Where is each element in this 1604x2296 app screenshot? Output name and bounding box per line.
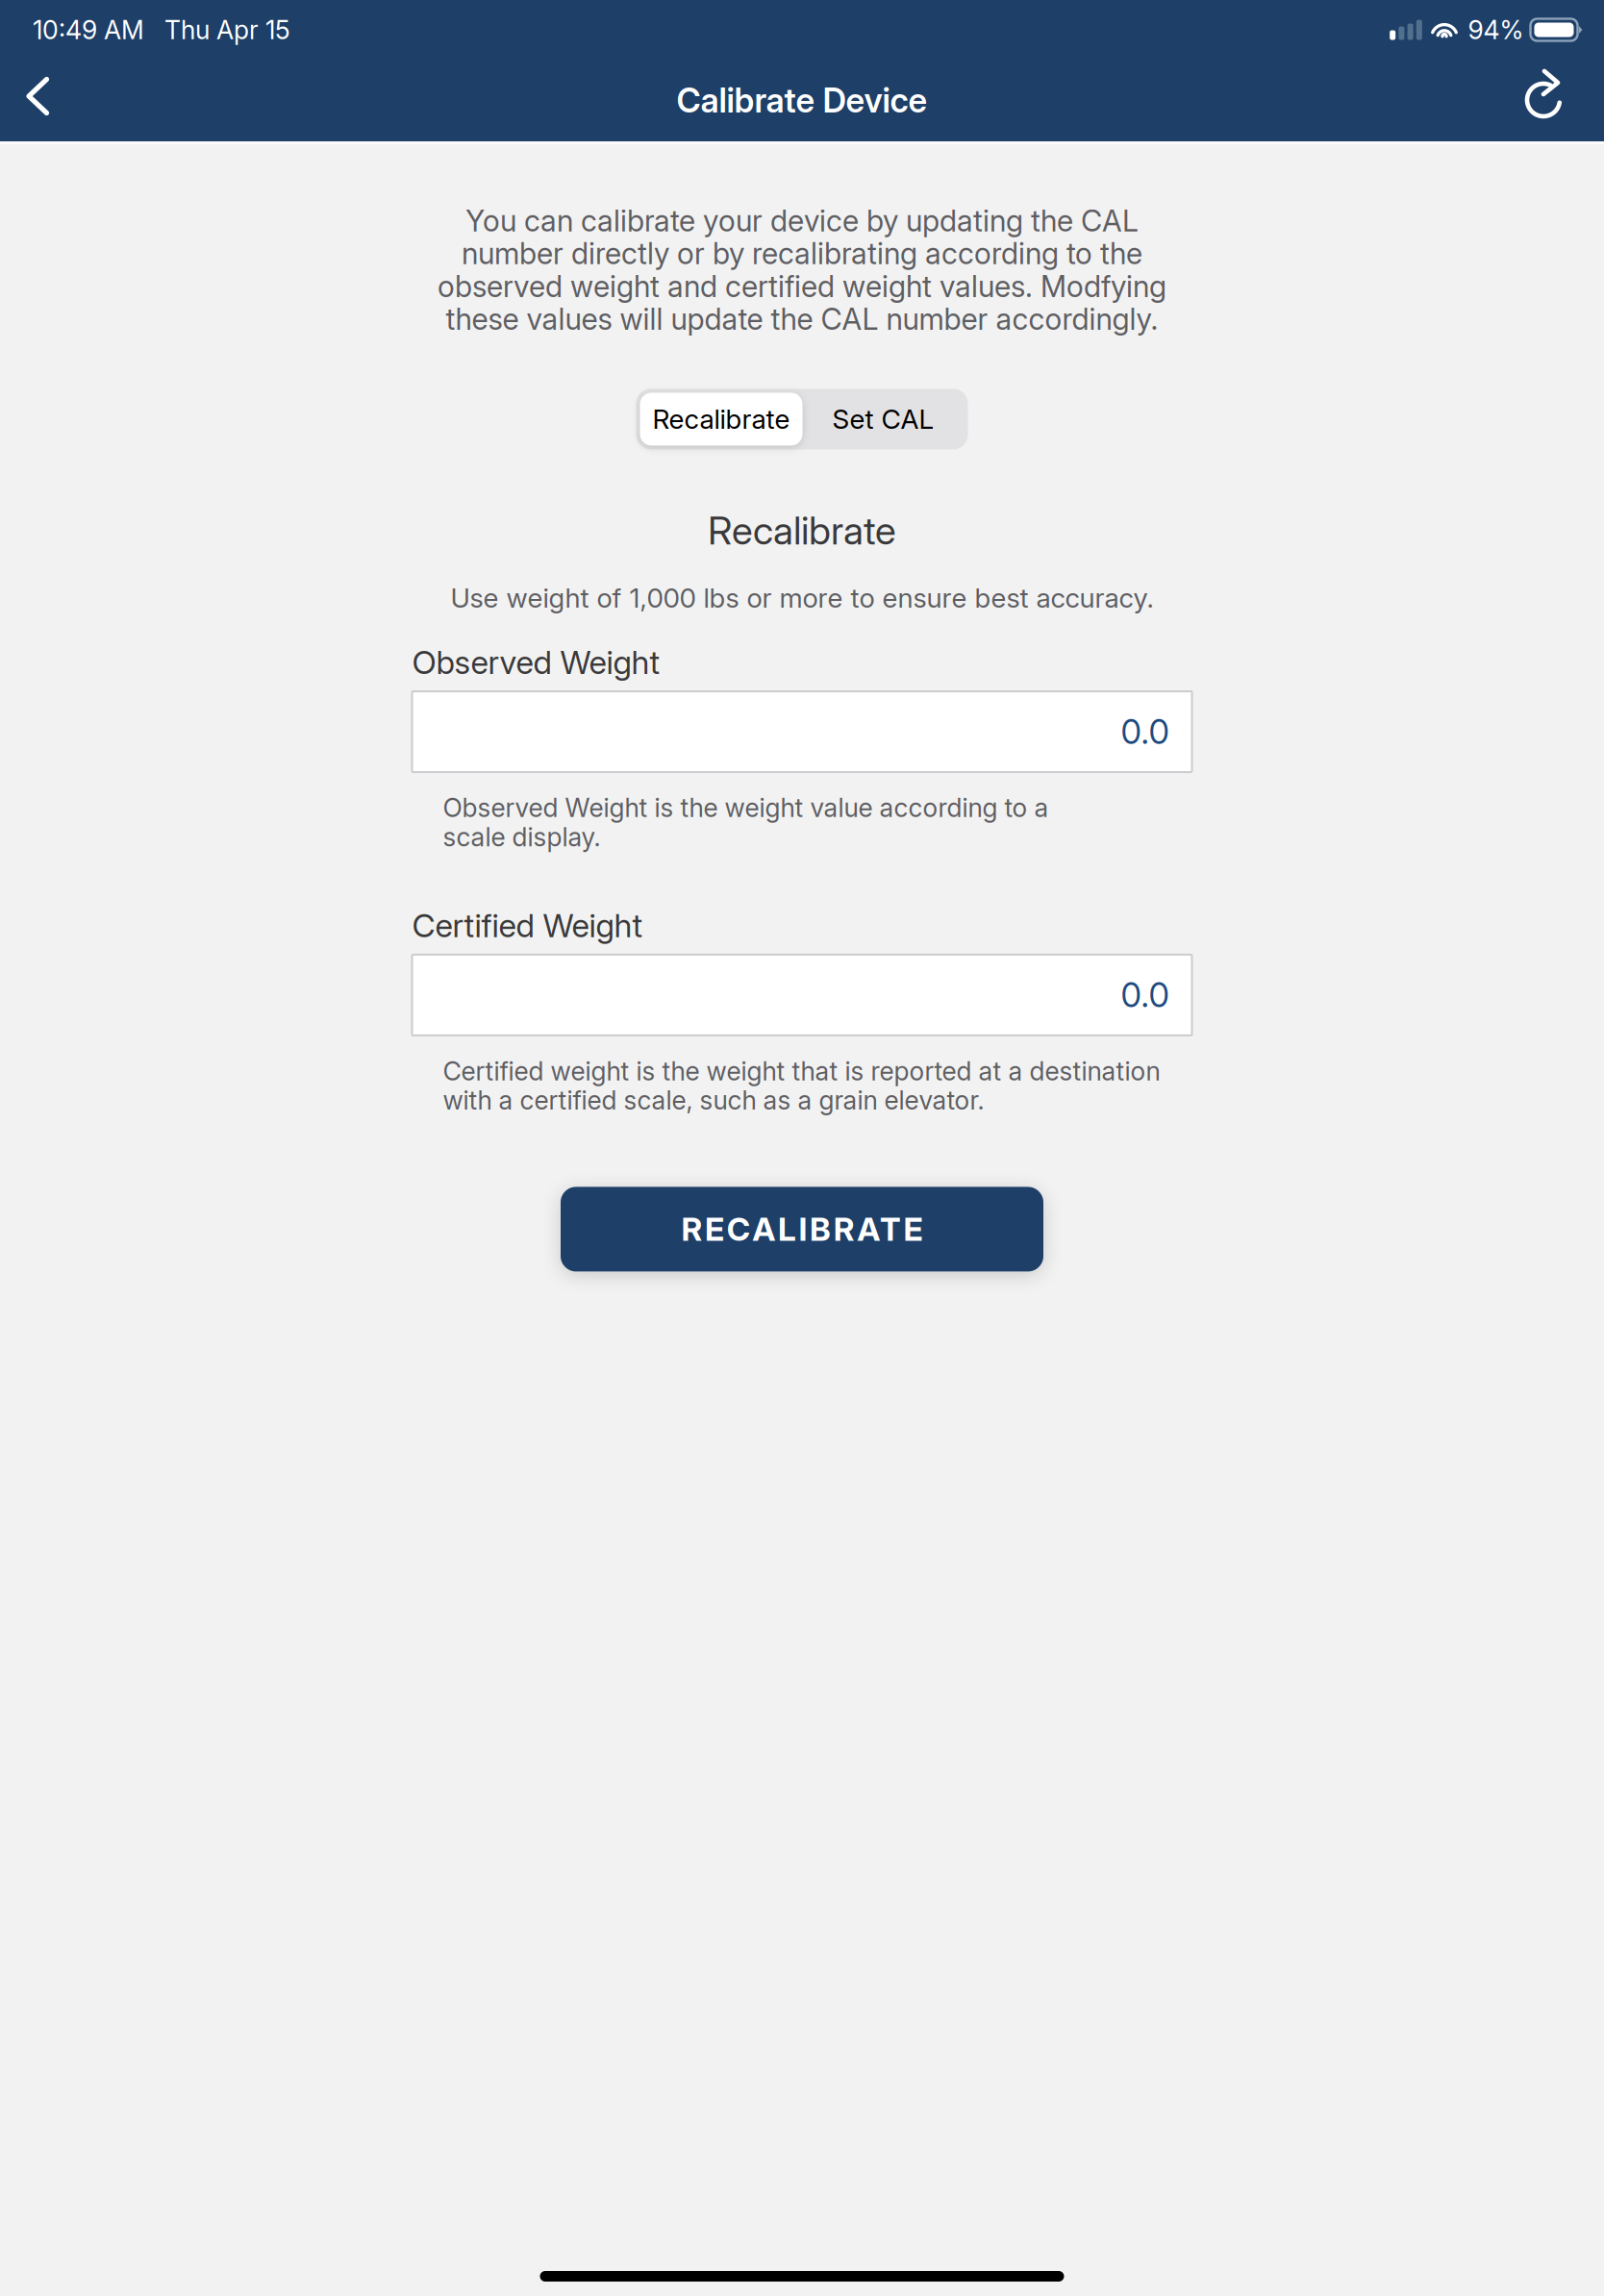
staticText: 10:49 AM bbox=[33, 14, 144, 45]
staticText: You can calibrate your device by updatin… bbox=[465, 203, 1139, 239]
button[interactable]: 0.0 bbox=[412, 691, 1192, 772]
staticText: Set CAL bbox=[832, 403, 934, 435]
staticText: 94% bbox=[1468, 14, 1524, 45]
staticText: number directly or by recalibrating acco… bbox=[462, 236, 1142, 271]
button[interactable]: Back bbox=[4, 60, 72, 141]
staticText: Observed Weight bbox=[412, 643, 660, 682]
staticText: Calibrate Device bbox=[677, 80, 927, 121]
button[interactable]: 0.0 bbox=[412, 955, 1192, 1035]
staticText: these values will update the CAL number … bbox=[446, 301, 1158, 337]
button[interactable]: RECALIBRATE bbox=[561, 1187, 1043, 1271]
button[interactable]: Set CAL bbox=[802, 393, 964, 446]
staticText: Certified Weight bbox=[412, 906, 643, 945]
staticText: 0.0 bbox=[1121, 975, 1169, 1015]
staticText: Certified weight is the weight that is r… bbox=[443, 1056, 1160, 1087]
staticText: Observed Weight is the weight value acco… bbox=[443, 792, 1049, 823]
staticText: Use weight of 1,000 lbs or more to ensur… bbox=[451, 581, 1153, 614]
staticText: RECALIBRATE bbox=[681, 1210, 923, 1249]
staticText: Thu Apr 15 bbox=[144, 14, 290, 45]
staticText: Recalibrate bbox=[708, 507, 896, 554]
staticText: with a certified scale, such as a grain … bbox=[443, 1085, 984, 1116]
staticText: scale display. bbox=[443, 821, 601, 852]
button[interactable]: Refresh bbox=[1505, 60, 1586, 141]
staticText: Recalibrate bbox=[652, 403, 790, 435]
staticText: 0.0 bbox=[1121, 712, 1169, 752]
button[interactable]: Recalibrate bbox=[640, 393, 802, 446]
staticText: observed weight and certified weight val… bbox=[438, 268, 1166, 304]
